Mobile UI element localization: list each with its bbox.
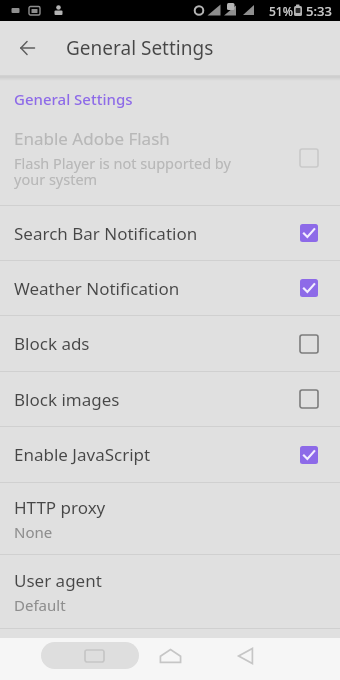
button[interactable]: HTTP proxy xyxy=(0,483,340,554)
button[interactable]: Home xyxy=(152,640,188,672)
staticText: Weather Notification xyxy=(14,277,296,300)
staticText: Enable JavaScript xyxy=(14,443,296,466)
staticText: Flash Player is not supported by your sy… xyxy=(14,153,231,189)
staticText: HTTP proxy xyxy=(14,496,106,519)
button[interactable]: Enable JavaScript xyxy=(0,427,340,482)
staticText: Default xyxy=(14,595,66,615)
staticText: Block images xyxy=(14,388,296,411)
staticText: 51% xyxy=(269,3,293,19)
button[interactable]: Back xyxy=(3,24,51,72)
staticText: User agent xyxy=(14,569,102,592)
staticText: Block ads xyxy=(14,332,296,355)
staticText: Enable Adobe Flash xyxy=(14,127,170,150)
staticText: Search Bar Notification xyxy=(14,222,296,245)
staticText: None xyxy=(14,522,53,542)
button[interactable]: Block images xyxy=(0,372,340,426)
button[interactable]: Recent apps xyxy=(41,642,139,669)
staticText: General Settings xyxy=(14,89,133,109)
button[interactable]: Search Bar Notification xyxy=(0,206,340,260)
staticText: 5:33 xyxy=(306,2,332,20)
button[interactable]: Block ads xyxy=(0,316,340,371)
button[interactable]: User agent xyxy=(0,555,340,628)
staticText: General Settings xyxy=(66,35,214,61)
button[interactable]: Enable Adobe Flash xyxy=(0,110,340,205)
button[interactable]: Weather Notification xyxy=(0,261,340,315)
button[interactable]: Back xyxy=(227,640,263,672)
